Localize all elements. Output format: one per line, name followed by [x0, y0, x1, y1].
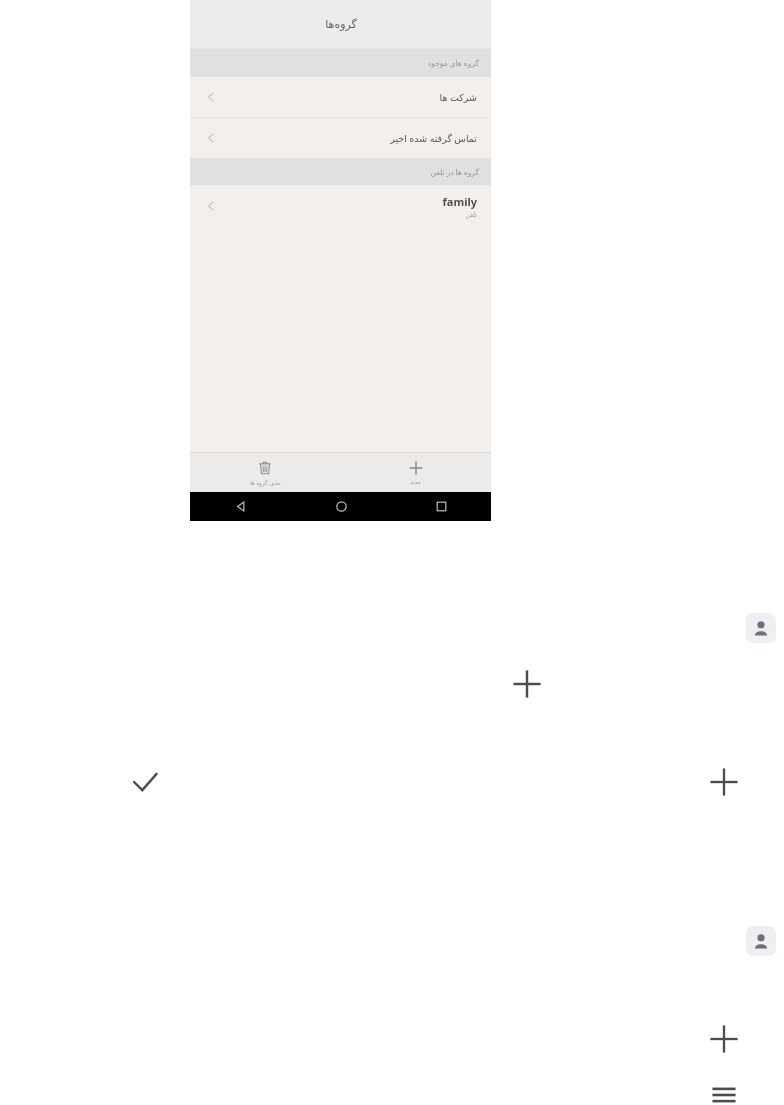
button[interactable]: شرکت ها — [190, 77, 491, 117]
button[interactable]: Add — [707, 765, 741, 799]
button[interactable]: Home — [326, 492, 356, 521]
staticText: تلفن — [465, 211, 477, 218]
button[interactable]: Add — [510, 667, 544, 701]
staticText: شرکت ها — [439, 91, 477, 104]
staticText: جدید — [410, 479, 421, 485]
button[interactable]: Add — [707, 1022, 741, 1056]
button[interactable]: حذف گروه ها — [190, 453, 340, 492]
button[interactable]: family — [190, 185, 491, 227]
staticText: حذف گروه ها — [250, 479, 281, 486]
button[interactable]: Recent apps — [426, 492, 456, 521]
staticText: گروه‌ها — [325, 18, 357, 31]
button[interactable]: جدید — [340, 453, 491, 492]
button[interactable]: Back — [226, 492, 256, 521]
staticText: گروه ها در تلفن — [430, 167, 479, 177]
button[interactable]: Menu — [707, 1078, 741, 1105]
staticText: تماس گرفته شده اخیر — [390, 132, 477, 145]
staticText: گروه های موجود — [427, 58, 479, 68]
button[interactable]: تماس گرفته شده اخیر — [190, 118, 491, 158]
button[interactable]: Confirm — [128, 765, 162, 799]
button[interactable]: Contact — [746, 613, 776, 643]
button[interactable]: Contact — [746, 926, 776, 956]
staticText: family — [442, 194, 477, 209]
